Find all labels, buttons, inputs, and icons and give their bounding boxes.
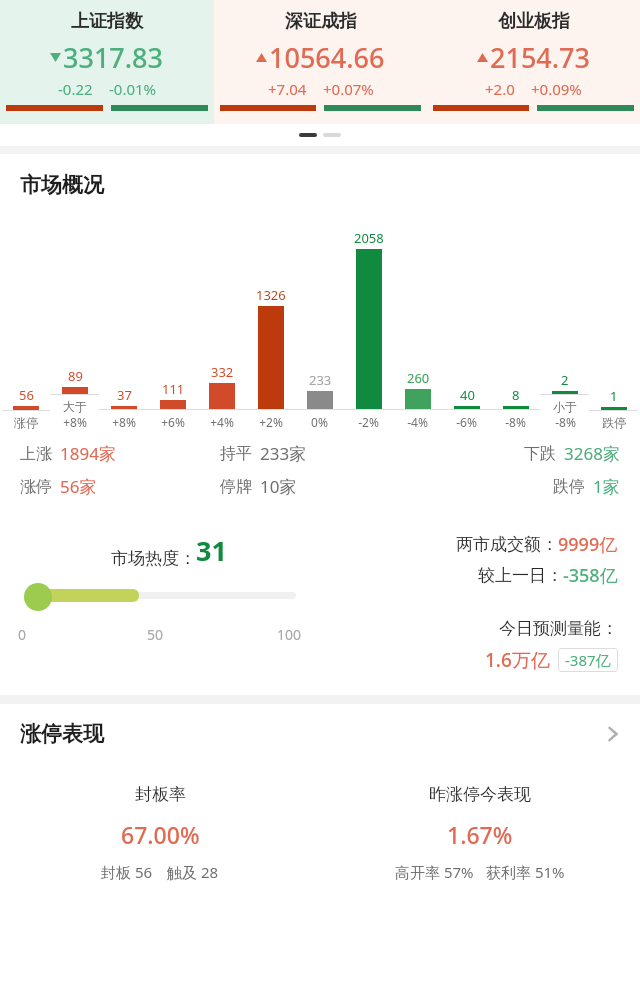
staticText: 40 <box>460 386 475 404</box>
button[interactable]: 封板率 <box>0 784 320 882</box>
staticText: 2 <box>561 371 569 389</box>
staticText: 233 <box>309 371 332 389</box>
staticText: 1326 <box>256 286 286 304</box>
staticText: +6% <box>161 414 185 430</box>
staticText: -0.01% <box>109 79 157 99</box>
staticText: 111 <box>162 380 185 398</box>
staticText: 37 <box>117 386 132 404</box>
staticText: 100 <box>277 625 302 644</box>
staticText: 0 <box>18 625 147 644</box>
staticText: 56 <box>19 386 34 404</box>
staticText: 今日预测量能： <box>499 618 618 639</box>
staticText: 大于 <box>63 399 87 414</box>
staticText: 市场热度： <box>111 548 196 569</box>
staticText: 创业板指 <box>498 10 570 33</box>
staticText: 9999亿 <box>558 532 618 557</box>
button[interactable]: Market heat slider <box>24 583 52 611</box>
staticText: 触及 28 <box>167 862 219 882</box>
staticText: 持平 <box>220 444 252 464</box>
staticText: 昨涨停今表现 <box>429 784 531 805</box>
staticText: 67.00% <box>121 819 200 850</box>
staticText: +8% <box>63 414 87 430</box>
button[interactable]: 深证成指 <box>214 0 427 124</box>
staticText: +8% <box>112 414 136 430</box>
staticText: 市场概况 <box>20 172 104 198</box>
staticText: 小于 <box>553 399 577 414</box>
staticText: 3268家 <box>564 442 620 465</box>
staticText: 1.6万亿 <box>485 647 550 673</box>
staticText: 2154.73 <box>490 39 591 76</box>
staticText: +0.09% <box>531 79 582 99</box>
staticText: -4% <box>407 414 428 430</box>
staticText: +2% <box>259 414 283 430</box>
staticText: 89 <box>68 367 83 385</box>
staticText: 260 <box>407 369 430 387</box>
staticText: 上涨 <box>20 444 52 464</box>
button[interactable]: 昨涨停今表现 <box>320 784 640 882</box>
staticText: 两市成交额： <box>456 534 558 555</box>
staticText: 2058 <box>354 229 384 247</box>
staticText: -358亿 <box>563 563 618 588</box>
staticText: +2.0 <box>485 79 515 99</box>
staticText: 31 <box>196 532 227 569</box>
staticText: 8 <box>512 386 520 404</box>
button[interactable]: 上证指数 <box>0 0 214 124</box>
staticText: 1 <box>610 387 618 405</box>
staticText: 233家 <box>260 442 307 465</box>
staticText: 涨停表现 <box>20 721 606 747</box>
staticText: 深证成指 <box>285 10 357 33</box>
staticText: 56家 <box>60 475 97 498</box>
staticText: 50 <box>147 625 277 644</box>
staticText: 涨停 <box>20 477 52 497</box>
staticText: 封板率 <box>135 784 186 805</box>
staticText: 1894家 <box>60 442 116 465</box>
staticText: 上证指数 <box>71 10 143 33</box>
staticText: 停牌 <box>220 477 252 497</box>
staticText: 1家 <box>593 475 620 498</box>
staticText: -0.22 <box>58 79 93 99</box>
staticText: 涨停 <box>14 415 38 430</box>
button[interactable]: 涨停表现 <box>0 704 640 764</box>
staticText: -6% <box>456 414 477 430</box>
staticText: -8% <box>555 414 576 430</box>
staticText: -2% <box>358 414 379 430</box>
staticText: 332 <box>211 363 234 381</box>
staticText: 较上一日： <box>478 565 563 586</box>
staticText: 1.67% <box>447 819 513 850</box>
staticText: +7.04 <box>268 79 307 99</box>
staticText: 10564.66 <box>269 39 385 76</box>
staticText: 3317.83 <box>63 39 164 76</box>
staticText: 0% <box>311 414 328 430</box>
staticText: 跌停 <box>602 415 626 430</box>
staticText: 获利率 51% <box>486 862 565 882</box>
staticText: +4% <box>210 414 234 430</box>
staticText: 跌停 <box>553 477 585 497</box>
staticText: -387亿 <box>565 650 611 670</box>
button[interactable]: 创业板指 <box>427 0 640 124</box>
staticText: 下跌 <box>524 444 556 464</box>
staticText: 高开率 57% <box>395 862 474 882</box>
staticText: 封板 56 <box>101 862 153 882</box>
staticText: -8% <box>505 414 526 430</box>
staticText: 10家 <box>260 475 297 498</box>
staticText: +0.07% <box>323 79 374 99</box>
